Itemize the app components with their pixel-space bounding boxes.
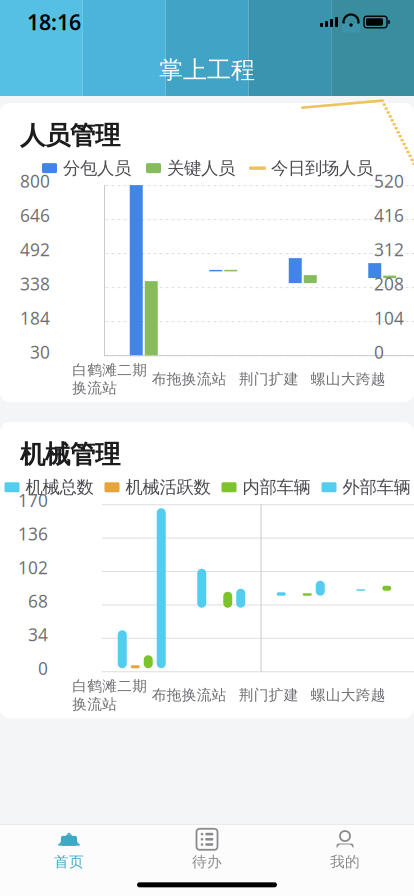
staticText: 首页 bbox=[54, 853, 84, 871]
staticText: 布拖换流站 bbox=[152, 370, 227, 388]
staticText: 30 bbox=[30, 341, 50, 364]
staticText: 机械总数 bbox=[25, 477, 93, 498]
staticText: 136 bbox=[18, 522, 48, 545]
staticText: 荆门扩建 bbox=[239, 686, 299, 704]
staticText: 68 bbox=[28, 589, 48, 612]
staticText: 人员管理 bbox=[20, 120, 120, 151]
staticText: 机械活跃数 bbox=[125, 477, 210, 498]
staticText: 0 bbox=[38, 657, 48, 680]
staticText: 内部车辆 bbox=[242, 477, 310, 498]
staticText: 螺山大跨越 bbox=[311, 686, 386, 704]
staticText: 待办 bbox=[192, 853, 222, 871]
staticText: 机械管理 bbox=[20, 439, 120, 470]
staticText: 104 bbox=[374, 306, 404, 329]
staticText: 关键人员 bbox=[167, 157, 235, 179]
button[interactable]: 待办 bbox=[138, 825, 276, 874]
staticText: 外部车辆 bbox=[342, 477, 410, 498]
staticText: 螺山大跨越 bbox=[311, 370, 386, 388]
staticText: 18:16 bbox=[27, 8, 81, 36]
staticText: 白鹤滩二期换流站 bbox=[72, 677, 147, 713]
button[interactable]: 我的 bbox=[276, 825, 414, 874]
staticText: 我的 bbox=[330, 853, 360, 871]
staticText: 布拖换流站 bbox=[152, 686, 227, 704]
button[interactable]: 首页 bbox=[0, 825, 138, 874]
staticText: 492 bbox=[20, 238, 50, 261]
staticText: 荆门扩建 bbox=[239, 370, 299, 388]
staticText: 416 bbox=[374, 204, 404, 227]
staticText: 646 bbox=[20, 204, 50, 227]
staticText: 170 bbox=[18, 489, 48, 512]
staticText: 102 bbox=[18, 556, 48, 579]
staticText: 白鹤滩二期换流站 bbox=[72, 361, 147, 397]
staticText: 0 bbox=[374, 341, 384, 364]
staticText: 184 bbox=[20, 306, 50, 329]
staticText: 338 bbox=[20, 272, 50, 295]
staticText: 今日到场人员 bbox=[271, 157, 373, 179]
staticText: 520 bbox=[374, 170, 404, 193]
staticText: 分包人员 bbox=[63, 157, 131, 179]
staticText: 312 bbox=[374, 238, 404, 261]
staticText: 208 bbox=[374, 272, 404, 295]
staticText: 800 bbox=[20, 170, 50, 193]
staticText: 掌上工程 bbox=[159, 55, 255, 85]
staticText: 34 bbox=[28, 623, 48, 646]
